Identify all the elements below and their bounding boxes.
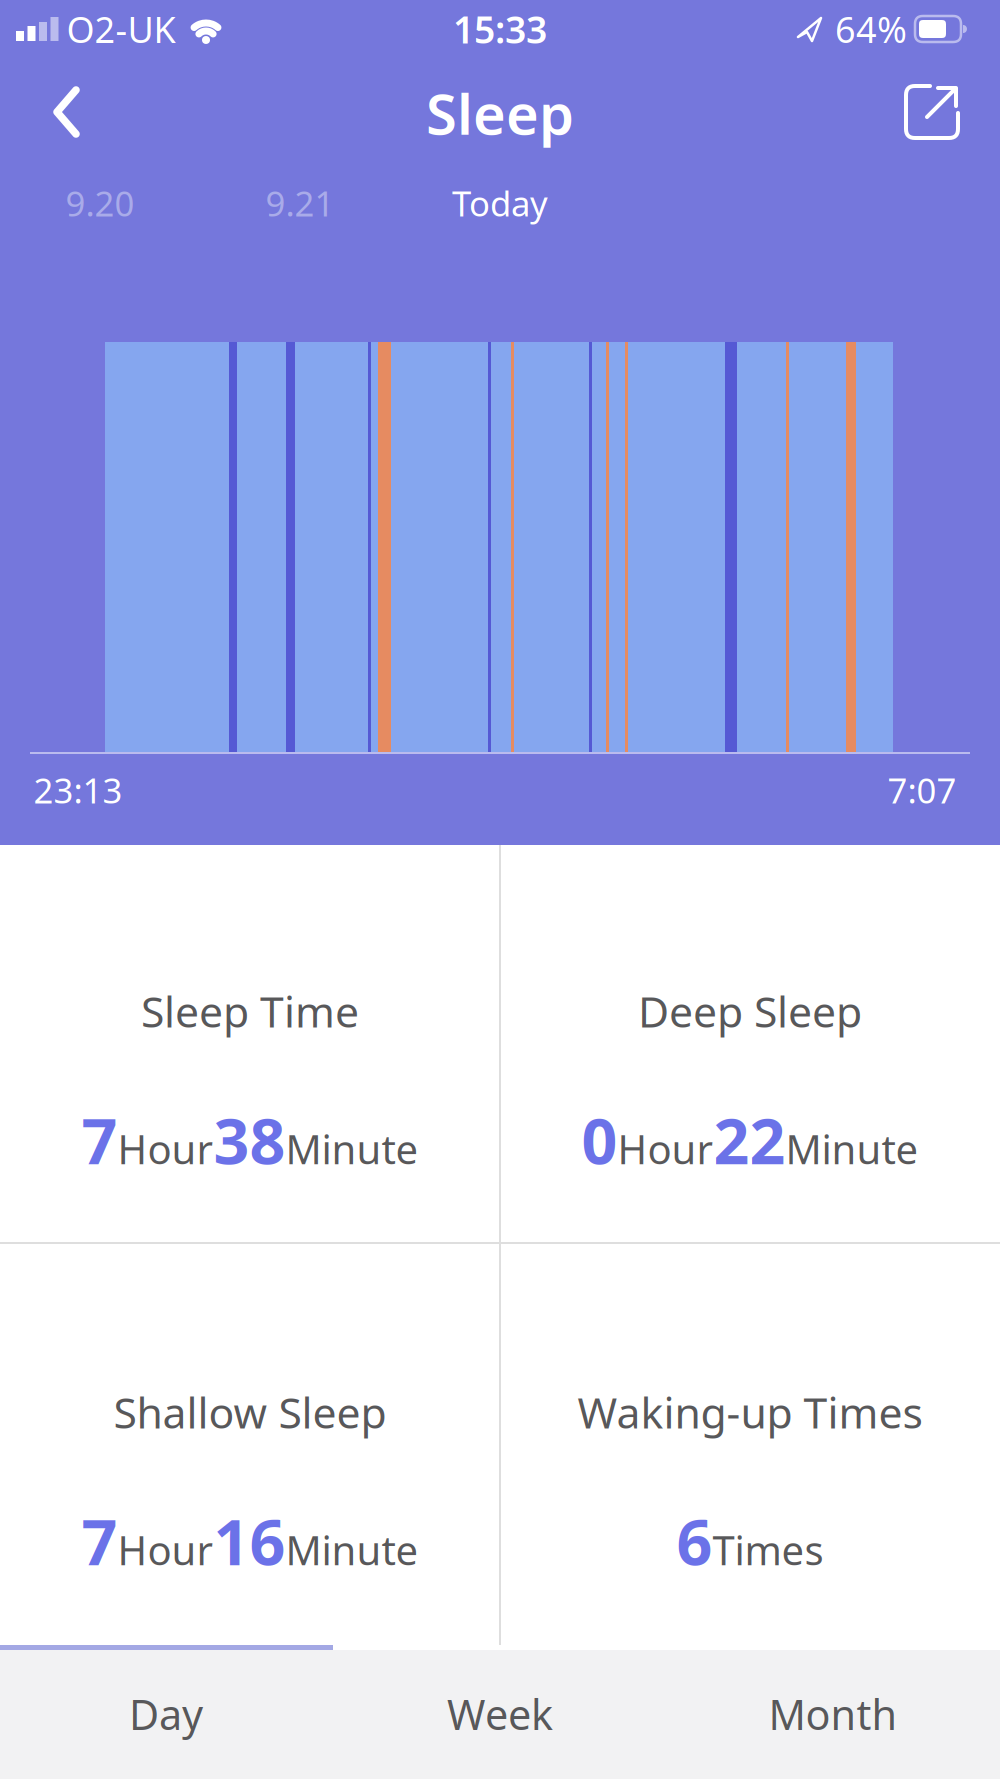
staticText: Sleep — [426, 76, 574, 150]
staticText: Hour — [117, 1523, 213, 1576]
staticText: 38 — [213, 1098, 285, 1182]
staticText: Minute — [285, 1523, 418, 1576]
staticText: 64% — [835, 5, 907, 53]
button[interactable]: Back — [46, 83, 90, 141]
staticText: 15:33 — [453, 4, 547, 54]
button[interactable]: Month — [666, 1649, 999, 1778]
staticText: Sleep Time — [141, 983, 359, 1039]
button[interactable]: Today — [420, 171, 580, 235]
staticText: 7 — [81, 1098, 117, 1182]
staticText: Minute — [785, 1122, 918, 1175]
button[interactable]: 9.21 — [220, 171, 380, 235]
staticText: Deep Sleep — [638, 983, 862, 1039]
staticText: 0 — [581, 1098, 617, 1182]
button[interactable]: Day — [0, 1649, 332, 1778]
staticText: Week — [447, 1687, 553, 1741]
staticText: 7:07 — [887, 767, 956, 813]
button[interactable]: Week — [333, 1649, 666, 1778]
staticText: 9.20 — [65, 180, 134, 226]
staticText: Waking-up Times — [577, 1384, 922, 1440]
staticText: Shallow Sleep — [113, 1384, 386, 1440]
staticText: Month — [768, 1687, 897, 1741]
staticText: 9.21 — [265, 180, 334, 226]
staticText: Day — [129, 1687, 203, 1741]
staticText: 22 — [713, 1098, 785, 1182]
staticText: 16 — [213, 1499, 285, 1583]
staticText: Hour — [117, 1122, 213, 1175]
staticText: Times — [712, 1523, 823, 1576]
staticText: O2-UK — [66, 5, 175, 53]
staticText: Today — [452, 180, 548, 226]
staticText: 23:13 — [33, 767, 122, 813]
staticText: 7 — [81, 1499, 117, 1583]
staticText: Minute — [285, 1122, 418, 1175]
button[interactable]: 9.20 — [20, 171, 180, 235]
staticText: 6 — [676, 1499, 712, 1583]
button[interactable]: Share — [902, 82, 962, 142]
staticText: Hour — [617, 1122, 713, 1175]
